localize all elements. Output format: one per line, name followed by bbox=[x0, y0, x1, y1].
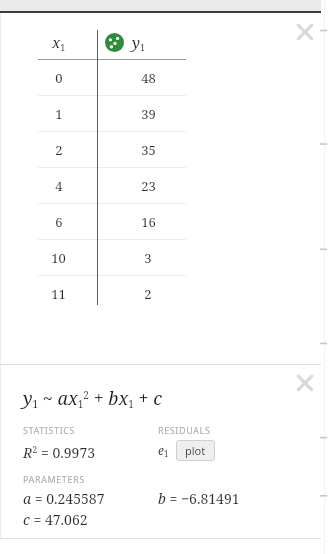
staticText: 11 bbox=[51, 285, 66, 303]
staticText: plot bbox=[185, 443, 206, 458]
button[interactable]: 4 bbox=[0, 168, 321, 203]
button[interactable]: 2 bbox=[0, 132, 321, 167]
button[interactable]: 11 bbox=[0, 276, 321, 311]
button[interactable]: Delete table bbox=[294, 21, 316, 43]
staticText: 1 bbox=[55, 105, 63, 123]
staticText: a = 0.245587 bbox=[23, 489, 158, 508]
staticText: STATISTICS bbox=[23, 424, 76, 436]
staticText: 10 bbox=[51, 249, 66, 267]
staticText: 39 bbox=[141, 105, 156, 123]
staticText: R2 = 0.9973 bbox=[23, 443, 96, 462]
button[interactable]: plot bbox=[176, 440, 215, 461]
staticText: 0 bbox=[55, 69, 63, 87]
staticText: y1 bbox=[132, 32, 145, 53]
staticText: 2 bbox=[55, 141, 63, 159]
button[interactable]: Change color bbox=[105, 33, 124, 52]
button[interactable]: Delete regression bbox=[294, 372, 316, 394]
staticText: c = 47.062 bbox=[23, 510, 88, 529]
staticText: 35 bbox=[141, 141, 156, 159]
staticText: 4 bbox=[55, 177, 63, 195]
staticText: y1 ~ ax12 + bx1 + c bbox=[23, 386, 163, 411]
staticText: 16 bbox=[141, 213, 156, 231]
staticText: 6 bbox=[55, 213, 63, 231]
staticText: 2 bbox=[144, 285, 152, 303]
staticText: e1 bbox=[158, 442, 169, 460]
staticText: RESIDUALS bbox=[158, 424, 211, 436]
staticText: PARAMETERS bbox=[23, 473, 85, 485]
staticText: 3 bbox=[144, 249, 152, 267]
button[interactable]: 1 bbox=[0, 96, 321, 131]
button[interactable]: 6 bbox=[0, 204, 321, 239]
staticText: 48 bbox=[141, 69, 156, 87]
staticText: b = −6.81491 bbox=[158, 489, 240, 508]
staticText: 23 bbox=[141, 177, 156, 195]
button[interactable]: 10 bbox=[0, 240, 321, 275]
staticText: x1 bbox=[52, 32, 66, 53]
button[interactable]: 0 bbox=[0, 60, 321, 95]
